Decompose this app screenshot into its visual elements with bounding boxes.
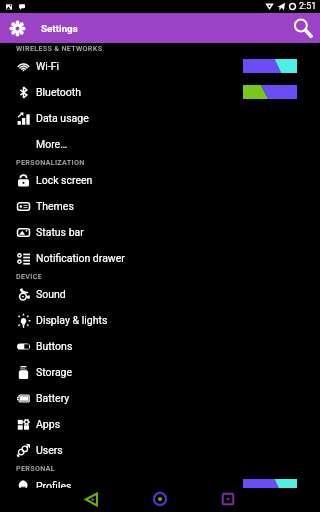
staticText: Buttons [36,340,73,352]
button[interactable]: Back [76,488,106,512]
staticText: 2:51 [299,1,317,12]
button[interactable]: Lock screen [0,167,320,193]
staticText: Status bar [36,226,84,238]
staticText: Sound [36,288,66,300]
staticText: Apps [36,418,61,430]
staticText: Bluetooth [36,86,81,98]
button[interactable]: Wi-Fi [0,53,320,79]
button[interactable]: Apps [0,411,320,437]
button[interactable]: Search [290,15,316,41]
button[interactable]: Users [0,437,320,463]
button[interactable]: Buttons [0,333,320,359]
staticText: PERSONALIZATION [16,158,85,166]
button[interactable]: More… [0,131,320,157]
staticText: Display & lights [36,314,108,326]
button[interactable]: Notification drawer [0,245,320,271]
staticText: Storage [36,366,73,378]
button[interactable]: Themes [0,193,320,219]
staticText: Profiles [36,480,72,488]
staticText: More… [36,138,68,150]
button[interactable]: Sound [0,281,320,307]
button[interactable]: Display & lights [0,307,320,333]
staticText: Notification drawer [36,252,125,264]
staticText: Battery [36,392,70,404]
button[interactable]: Data usage [0,105,320,131]
button[interactable]: Status bar [0,219,320,245]
button[interactable]: Bluetooth [0,79,320,105]
staticText: Themes [36,200,74,212]
button[interactable]: Settings [6,17,28,39]
staticText: DEVICE [16,272,43,280]
button[interactable]: Recent apps [213,488,243,512]
staticText: Users [36,444,63,456]
staticText: Wi-Fi [36,60,60,72]
staticText: WIRELESS & NETWORKS [16,44,103,52]
button[interactable]: Profiles [0,473,320,488]
button[interactable]: Home [145,488,175,512]
button[interactable]: Storage [0,359,320,385]
staticText: Settings [41,23,78,34]
staticText: Lock screen [36,174,93,186]
button[interactable]: Battery [0,385,320,411]
staticText: PERSONAL [16,464,55,472]
staticText: Data usage [36,112,89,124]
